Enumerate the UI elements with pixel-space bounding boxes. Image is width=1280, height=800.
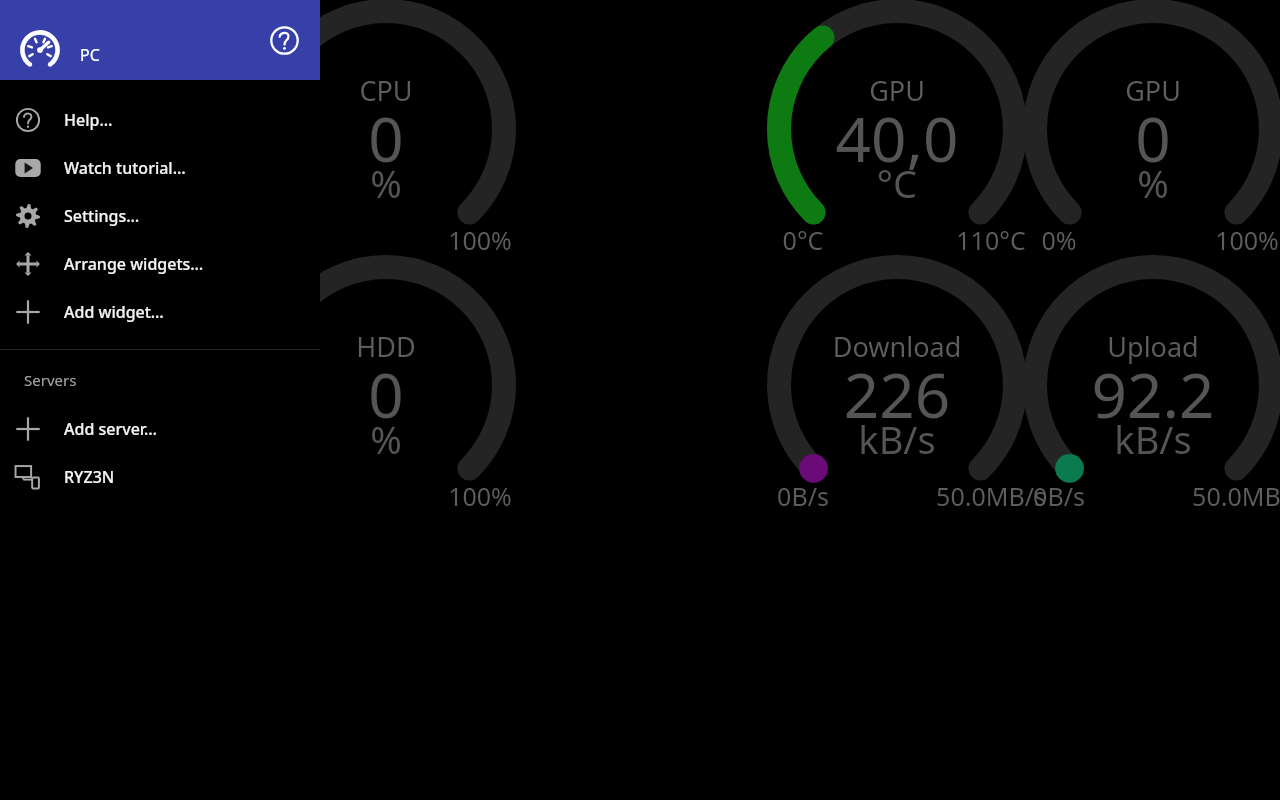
staticText: Servers: [24, 370, 77, 390]
staticText: GPU: [1003, 72, 1280, 109]
staticText: Upload: [1003, 328, 1280, 365]
staticText: %: [236, 157, 536, 209]
staticText: 0: [236, 96, 536, 180]
staticText: 100%: [330, 479, 630, 513]
staticText: GPU: [747, 72, 1047, 109]
staticText: Settings…: [64, 205, 140, 227]
staticText: HDD: [236, 328, 536, 365]
staticText: 40,0: [747, 96, 1047, 180]
staticText: Help…: [64, 109, 113, 131]
staticText: Download: [747, 328, 1047, 365]
staticText: 92.2: [1003, 352, 1280, 436]
staticText: °C: [747, 157, 1047, 209]
staticText: 0%: [909, 223, 1209, 257]
staticText: 0B/s: [909, 479, 1209, 513]
staticText: 100%: [1097, 223, 1280, 257]
staticText: CPU: [236, 72, 536, 109]
button[interactable]: Settings…: [0, 192, 320, 240]
staticText: 0: [236, 352, 536, 436]
staticText: 0°C: [653, 223, 953, 257]
staticText: %: [236, 413, 536, 465]
staticText: 226: [747, 352, 1047, 436]
staticText: PC: [80, 44, 100, 66]
button[interactable]: Arrange widgets…: [0, 240, 320, 288]
staticText: %: [1003, 157, 1280, 209]
staticText: 50.0MB/s: [1097, 479, 1280, 513]
staticText: 0B/s: [653, 479, 953, 513]
button[interactable]: Add server…: [0, 405, 320, 453]
button[interactable]: Help: [262, 18, 306, 62]
staticText: Watch tutorial…: [64, 157, 186, 179]
button[interactable]: Help…: [0, 96, 320, 144]
staticText: RYZ3N: [64, 466, 115, 488]
staticText: 100%: [330, 223, 630, 257]
staticText: 110°C: [841, 223, 1141, 257]
staticText: kB/s: [1003, 413, 1280, 465]
staticText: Add server…: [64, 418, 157, 440]
staticText: 50.0MB/s: [841, 479, 1141, 513]
button[interactable]: Watch tutorial…: [0, 144, 320, 192]
button[interactable]: PC: [0, 0, 320, 80]
staticText: kB/s: [747, 413, 1047, 465]
button[interactable]: RYZ3N: [0, 453, 320, 501]
staticText: Add widget…: [64, 301, 164, 323]
staticText: Arrange widgets…: [64, 253, 204, 275]
button[interactable]: Add widget…: [0, 288, 320, 336]
staticText: 0: [1003, 96, 1280, 180]
